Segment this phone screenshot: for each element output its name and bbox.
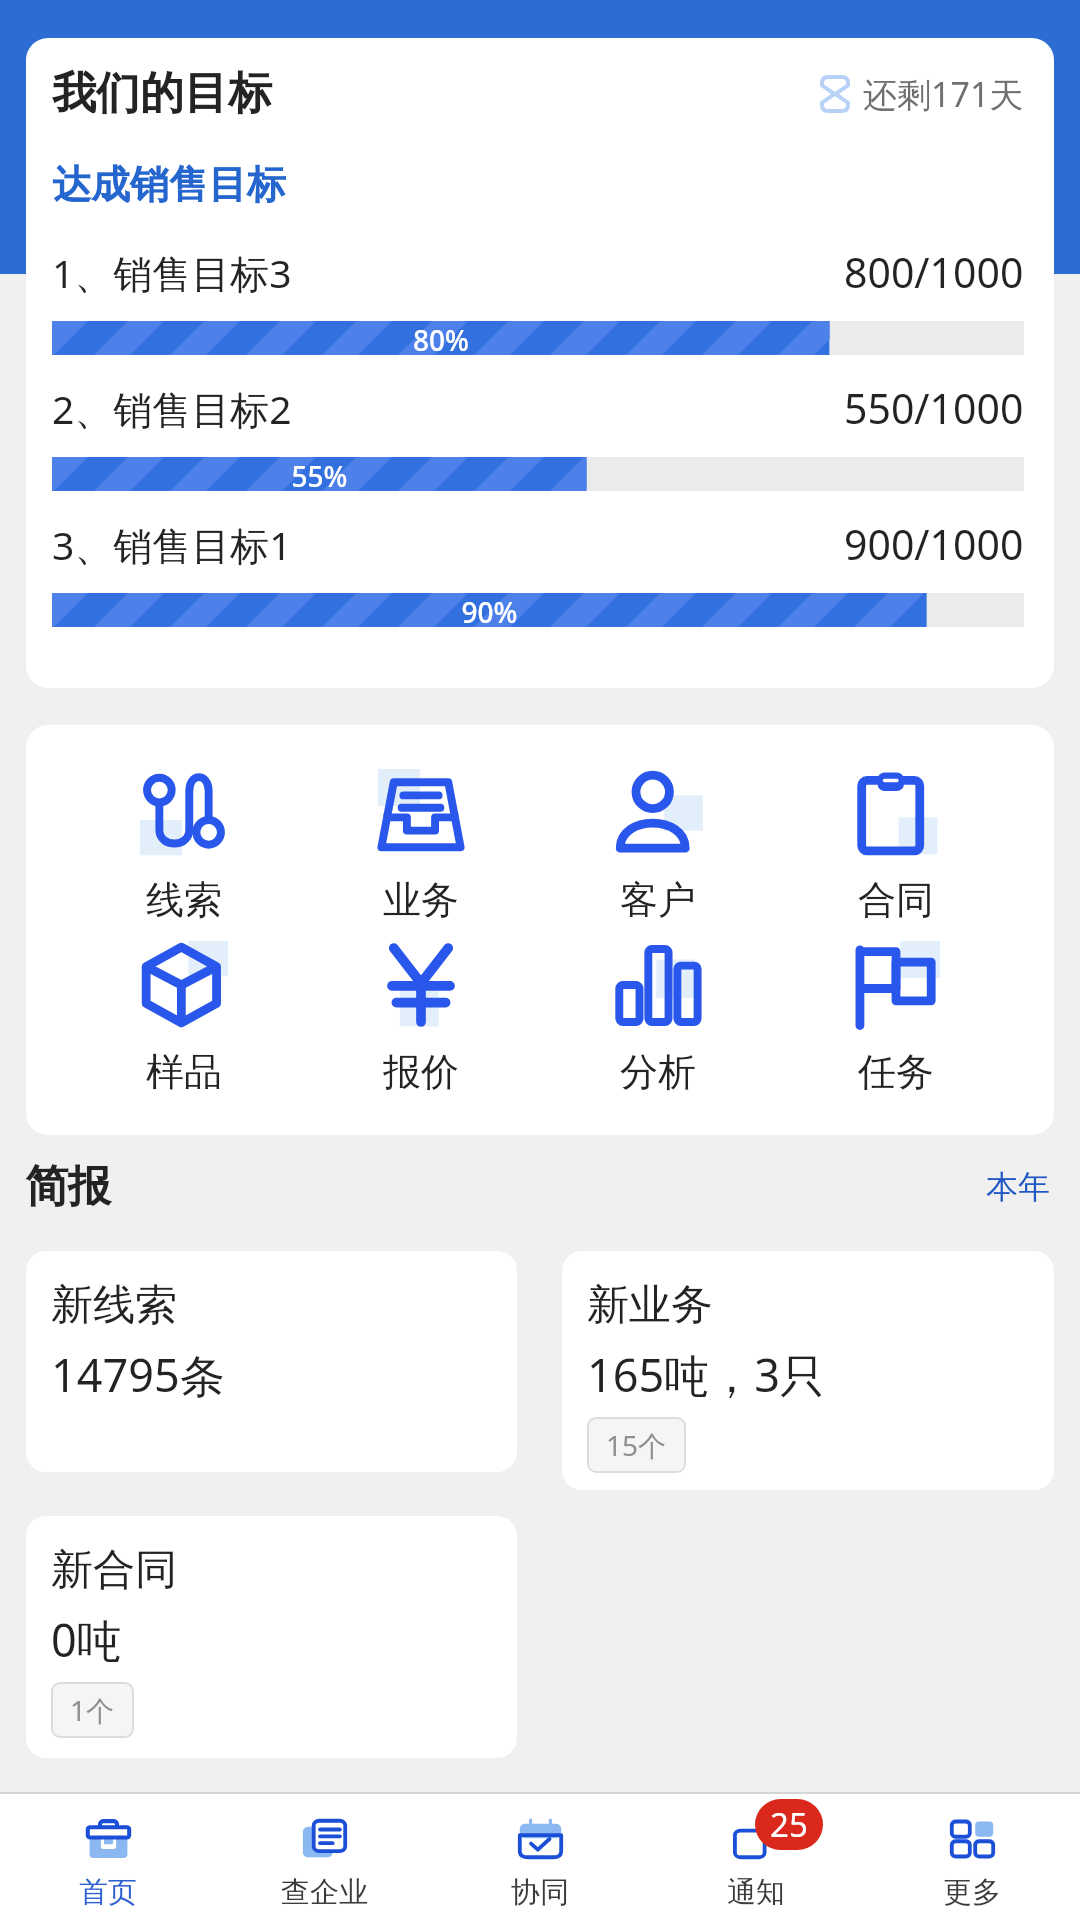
staticText: 165吨，3只 (587, 1344, 825, 1405)
button[interactable]: 新合同 (26, 1516, 517, 1758)
button[interactable]: More (864, 1794, 1080, 1911)
staticText: 新业务 (587, 1279, 713, 1332)
button[interactable]: 本年 (986, 1167, 1050, 1207)
button[interactable]: 分析 (539, 941, 777, 1096)
staticText: 0吨 (51, 1609, 122, 1670)
staticText: 简报 (25, 1160, 111, 1214)
button[interactable]: 线索 (65, 769, 302, 924)
staticText: 还剩171天 (863, 71, 1024, 117)
staticText: 业务 (383, 876, 459, 924)
staticText: 80% (52, 321, 830, 355)
staticText: 报价 (383, 1048, 459, 1096)
staticText: 更多 (943, 1874, 1001, 1911)
staticText: 通知 (727, 1874, 785, 1911)
button[interactable]: 新线索 (26, 1251, 517, 1472)
button[interactable]: 2、销售目标2 (52, 380, 1024, 491)
button[interactable]: 3、销售目标1 (52, 516, 1024, 627)
staticText: 15个 (606, 1426, 667, 1464)
staticText: 新线索 (51, 1279, 177, 1332)
staticText: 3、销售目标1 (52, 518, 292, 571)
button[interactable]: 我们的目标 (26, 38, 1054, 688)
staticText: 样品 (146, 1048, 222, 1096)
staticText: 查企业 (281, 1874, 368, 1911)
staticText: 800/1000 (844, 244, 1024, 300)
staticText: 分析 (620, 1048, 696, 1096)
button[interactable]: 客户 (539, 769, 777, 924)
staticText: 1个 (70, 1691, 115, 1729)
staticText: 2、销售目标2 (52, 382, 292, 435)
staticText: 本年 (986, 1167, 1050, 1207)
button[interactable]: 合同 (777, 769, 1015, 924)
button[interactable]: 1、销售目标3 (52, 244, 1024, 355)
button[interactable]: 样品 (65, 941, 302, 1096)
staticText: 任务 (858, 1048, 934, 1096)
staticText: 合同 (858, 876, 934, 924)
button[interactable]: 任务 (777, 941, 1015, 1096)
staticText: 550/1000 (844, 380, 1024, 436)
staticText: 90% (52, 593, 927, 627)
staticText: 25 (770, 1802, 808, 1847)
staticText: 55% (52, 457, 587, 491)
staticText: 900/1000 (844, 516, 1024, 572)
staticText: 线索 (146, 876, 222, 924)
staticText: 新合同 (51, 1544, 177, 1597)
staticText: 14795条 (51, 1344, 225, 1405)
button[interactable]: Notifications (648, 1794, 864, 1911)
button[interactable]: Search company (216, 1794, 432, 1911)
staticText: 客户 (620, 876, 696, 924)
button[interactable]: 报价 (302, 941, 539, 1096)
staticText: 首页 (79, 1874, 137, 1911)
button[interactable]: 新业务 (562, 1251, 1054, 1490)
staticText: 1、销售目标3 (52, 246, 292, 299)
staticText: 达成销售目标 (52, 160, 286, 209)
staticText: 我们的目标 (52, 66, 272, 121)
button[interactable]: Collaboration (432, 1794, 648, 1911)
button[interactable]: Home (0, 1794, 216, 1911)
button[interactable]: 业务 (302, 769, 539, 924)
staticText: 协同 (511, 1874, 569, 1911)
